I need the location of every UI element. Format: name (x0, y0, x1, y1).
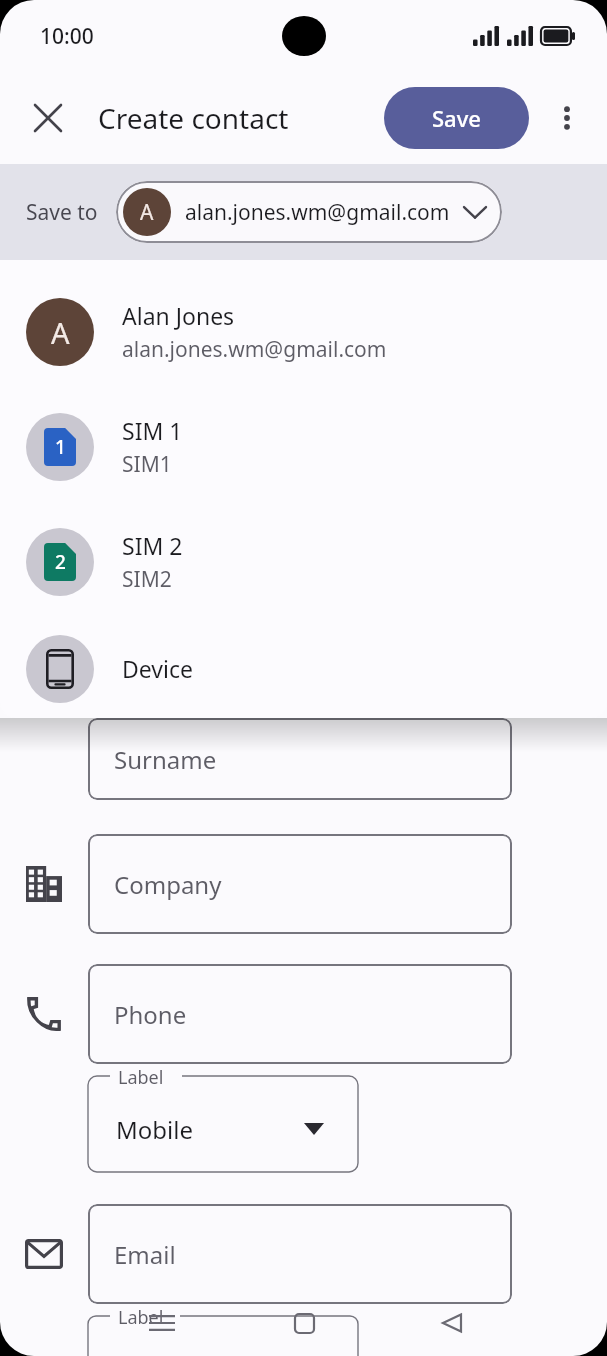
staticText: Company (114, 868, 222, 901)
staticText: Phone (114, 998, 187, 1031)
button[interactable]: Device (0, 619, 607, 718)
button[interactable]: Label (88, 1076, 358, 1172)
button[interactable]: A (116, 181, 502, 243)
staticText: Create contact (98, 99, 289, 137)
staticText: A (51, 313, 70, 352)
staticText: Surname (114, 743, 217, 776)
button[interactable]: Back (425, 1296, 479, 1350)
staticText: Save (432, 103, 481, 133)
button[interactable]: Company (88, 834, 512, 934)
button[interactable]: Surname (88, 718, 512, 800)
staticText: Save to (26, 198, 98, 227)
button[interactable]: Home (277, 1296, 331, 1350)
staticText: Label (118, 1065, 164, 1090)
staticText: A (140, 198, 154, 227)
staticText: Email (114, 1238, 176, 1271)
button[interactable]: Phone (88, 964, 512, 1064)
staticText: SIM2 (122, 565, 172, 594)
staticText: alan.jones.wm@gmail.com (122, 335, 387, 364)
button[interactable]: 2 (0, 504, 607, 619)
button[interactable]: Email (88, 1204, 512, 1304)
staticText: Mobile (116, 1113, 193, 1146)
button[interactable]: Label (88, 1316, 358, 1356)
button[interactable]: Recent apps (135, 1296, 189, 1350)
button[interactable]: A (0, 274, 607, 389)
staticText: Device (122, 653, 193, 684)
button[interactable]: More options (541, 92, 593, 144)
staticText: Label (118, 1305, 164, 1330)
button[interactable]: Close (22, 92, 74, 144)
staticText: alan.jones.wm@gmail.com (185, 198, 450, 227)
staticText: SIM 2 (122, 530, 183, 561)
staticText: SIM 1 (122, 415, 183, 446)
button[interactable]: Save (384, 87, 529, 149)
staticText: 10:00 (40, 22, 94, 51)
staticText: SIM1 (122, 450, 172, 479)
staticText: 1 (55, 434, 66, 460)
staticText: Alan Jones (122, 300, 235, 331)
staticText: 2 (55, 549, 66, 575)
button[interactable]: 1 (0, 389, 607, 504)
